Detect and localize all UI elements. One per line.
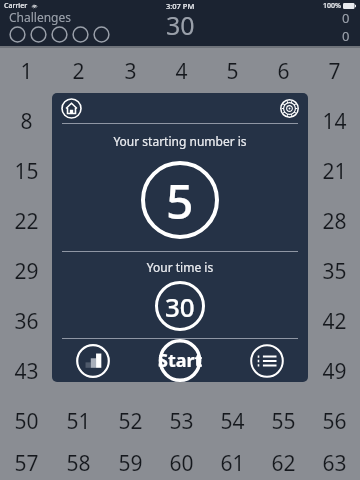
button[interactable]: Settings <box>277 96 301 120</box>
staticText: 59 <box>118 449 143 478</box>
staticText: 11 <box>169 107 194 136</box>
staticText: 46 <box>169 357 194 386</box>
button[interactable]: Leaderboard <box>248 342 286 380</box>
staticText: 8 <box>20 107 33 136</box>
staticText: 51 <box>66 407 91 436</box>
staticText: 7 <box>328 57 341 86</box>
staticText: 55 <box>271 407 296 436</box>
staticText: 30 <box>166 8 195 42</box>
staticText: 28 <box>322 207 347 236</box>
staticText: 5 <box>166 168 194 233</box>
staticText: 43 <box>14 357 39 386</box>
staticText: 42 <box>322 307 347 336</box>
staticText: 100% <box>323 1 341 11</box>
staticText: 6 <box>277 57 290 86</box>
staticText: 30 <box>165 289 195 324</box>
staticText: 45 <box>118 357 143 386</box>
staticText: 29 <box>14 257 39 286</box>
button[interactable]: Statistics <box>74 342 112 380</box>
button[interactable]: 30 <box>155 281 205 331</box>
staticText: 10 <box>118 107 143 136</box>
staticText: 12 <box>220 107 245 136</box>
staticText: 0 <box>342 27 350 45</box>
staticText: 62 <box>271 449 296 478</box>
staticText: 53 <box>169 407 194 436</box>
staticText: 36 <box>14 307 39 336</box>
staticText: Start <box>158 348 203 373</box>
button[interactable]: Start <box>151 339 209 382</box>
staticText: 0 <box>342 9 350 27</box>
staticText: Carrier <box>4 1 28 11</box>
staticText: 13 <box>271 107 296 136</box>
staticText: 3:07 PM <box>166 1 195 11</box>
staticText: 49 <box>322 357 347 386</box>
staticText: 60 <box>169 449 194 478</box>
staticText: 63 <box>322 449 347 478</box>
button[interactable]: Home <box>59 96 83 120</box>
staticText: 14 <box>322 107 347 136</box>
staticText: 57 <box>14 449 39 478</box>
staticText: Your time is <box>52 259 308 275</box>
staticText: 1 <box>20 57 33 86</box>
staticText: 2 <box>72 57 85 86</box>
button[interactable]: 5 <box>141 161 219 239</box>
staticText: 56 <box>322 407 347 436</box>
staticText: 21 <box>322 157 347 186</box>
staticText: 58 <box>66 449 91 478</box>
staticText: 35 <box>322 257 347 286</box>
staticText: 22 <box>14 207 39 236</box>
staticText: 32 <box>169 257 194 286</box>
staticText: Your starting number is <box>52 133 308 149</box>
staticText: 3 <box>124 57 137 86</box>
staticText: 52 <box>118 407 143 436</box>
staticText: 9 <box>72 107 85 136</box>
staticText: 5 <box>226 57 239 86</box>
staticText: 15 <box>14 157 39 186</box>
staticText: 48 <box>271 357 296 386</box>
staticText: 24 <box>118 207 143 236</box>
staticText: 50 <box>14 407 39 436</box>
staticText: 44 <box>66 357 91 386</box>
staticText: 4 <box>175 57 188 86</box>
staticText: 25 <box>169 207 194 236</box>
staticText: 54 <box>220 407 245 436</box>
staticText: 47 <box>220 357 245 386</box>
staticText: 39 <box>169 307 194 336</box>
staticText: 61 <box>220 449 245 478</box>
staticText: Challenges <box>9 9 72 25</box>
staticText: 18 <box>169 157 194 186</box>
